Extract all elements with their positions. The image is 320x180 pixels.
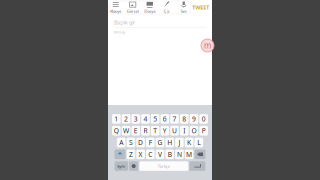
staticText: G	[157, 138, 162, 147]
button[interactable]: 2	[122, 114, 130, 124]
staticText: TWEET	[192, 4, 209, 11]
button[interactable]: I	[180, 126, 189, 135]
button[interactable]: 3	[131, 114, 140, 124]
button[interactable]: M	[185, 149, 193, 159]
button[interactable]: V	[156, 149, 164, 159]
staticText: Dosya	[144, 9, 155, 14]
button[interactable]: T	[151, 126, 159, 135]
button[interactable]: 4	[141, 114, 150, 124]
button[interactable]: Çiz	[158, 0, 175, 14]
staticText: H	[167, 138, 172, 147]
staticText: 3	[134, 114, 138, 123]
staticText: 1	[114, 114, 118, 123]
button[interactable]: 9	[190, 114, 198, 124]
button[interactable]: Sym	[115, 161, 128, 171]
button[interactable]: Emoji	[129, 161, 138, 171]
staticText: V	[158, 150, 162, 159]
staticText: m	[204, 40, 211, 51]
button[interactable]: Q	[112, 126, 121, 135]
staticText: 6	[163, 114, 167, 123]
staticText: J	[178, 138, 180, 147]
button[interactable]: K	[185, 138, 193, 147]
staticText: 7	[173, 114, 177, 123]
staticText: 8	[182, 114, 186, 123]
staticText: Q	[114, 126, 119, 135]
button[interactable]: Ses	[175, 0, 192, 14]
button[interactable]: D	[136, 138, 145, 147]
staticText: Başlık gir	[114, 19, 135, 26]
staticText: P	[202, 126, 206, 135]
staticText: D	[138, 138, 143, 147]
button[interactable]: Delete	[194, 149, 205, 159]
button[interactable]: 5	[151, 114, 159, 124]
staticText: N	[177, 150, 182, 159]
button[interactable]: 1	[112, 114, 121, 124]
staticText: I	[183, 126, 185, 135]
staticText: Klavye	[110, 9, 121, 14]
button[interactable]: J	[175, 138, 184, 147]
button[interactable]: TWEET	[190, 0, 211, 14]
staticText: Mesaj	[114, 29, 125, 35]
button[interactable]: Türkçe	[139, 161, 188, 171]
button[interactable]: Return	[189, 161, 205, 171]
button[interactable]: H	[165, 138, 174, 147]
button[interactable]: X	[136, 149, 145, 159]
button[interactable]: 0	[199, 114, 208, 124]
staticText: O	[191, 126, 196, 135]
staticText: Görsel	[127, 9, 139, 14]
button[interactable]: Dosya	[141, 0, 158, 14]
staticText: L	[197, 138, 200, 147]
button[interactable]: F	[146, 138, 155, 147]
button[interactable]: Y	[161, 126, 169, 135]
button[interactable]: E	[131, 126, 140, 135]
staticText: Sym	[117, 163, 125, 169]
staticText: Çiz	[164, 9, 170, 14]
staticText: 9	[192, 114, 196, 123]
button[interactable]: Z	[127, 149, 135, 159]
staticText: B	[168, 150, 172, 159]
staticText: Ses	[181, 9, 187, 14]
staticText: A	[119, 138, 123, 147]
button[interactable]: B	[165, 149, 174, 159]
button[interactable]: O	[190, 126, 198, 135]
button[interactable]: A	[117, 138, 125, 147]
staticText: F	[149, 138, 152, 147]
staticText: T	[153, 126, 157, 135]
button[interactable]: G	[156, 138, 164, 147]
staticText: K	[187, 138, 191, 147]
button[interactable]: Görsel	[124, 0, 141, 14]
staticText: 5	[153, 114, 157, 123]
staticText: M	[186, 150, 192, 159]
button[interactable]: S	[127, 138, 135, 147]
button[interactable]: C	[146, 149, 155, 159]
staticText: S	[129, 138, 133, 147]
staticText: Y	[163, 126, 167, 135]
button[interactable]: N	[175, 149, 184, 159]
button[interactable]: Klavye	[107, 0, 124, 14]
staticText: 4	[143, 114, 147, 123]
button[interactable]: 6	[161, 114, 169, 124]
staticText: 2	[124, 114, 128, 123]
staticText: W	[123, 126, 129, 135]
button[interactable]: Shift	[114, 149, 125, 159]
staticText: R	[143, 126, 147, 135]
button[interactable]: P	[199, 126, 208, 135]
staticText: Z	[129, 150, 133, 159]
button[interactable]: L	[194, 138, 203, 147]
staticText: E	[134, 126, 138, 135]
button[interactable]: 8	[180, 114, 189, 124]
staticText: C	[148, 150, 152, 159]
staticText: Türkçe	[158, 163, 170, 169]
button[interactable]: 7	[170, 114, 179, 124]
staticText: X	[139, 150, 143, 159]
staticText: 0	[202, 114, 206, 123]
button[interactable]: U	[170, 126, 179, 135]
button[interactable]: W	[122, 126, 130, 135]
button[interactable]: Media	[201, 39, 214, 52]
staticText: U	[172, 126, 177, 135]
button[interactable]: R	[141, 126, 150, 135]
